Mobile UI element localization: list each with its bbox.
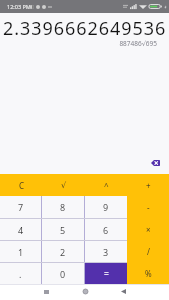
button[interactable]: Recent apps <box>27 285 66 300</box>
button[interactable]: 4 <box>0 219 41 240</box>
button[interactable]: 3 <box>85 241 127 262</box>
staticText: 4 <box>18 224 24 236</box>
button[interactable]: Back <box>104 285 142 300</box>
staticText: ^ <box>104 180 109 191</box>
staticText: × <box>146 224 151 235</box>
button[interactable]: - <box>127 196 169 218</box>
staticText: 0 <box>60 268 66 280</box>
staticText: 7 <box>18 201 24 213</box>
staticText: . <box>19 268 22 280</box>
button[interactable]: C <box>0 174 43 196</box>
button[interactable]: = <box>85 263 127 284</box>
staticText: + <box>146 180 151 191</box>
staticText: C <box>19 180 25 191</box>
staticText: 2.3396662649536 <box>3 16 169 41</box>
button[interactable]: × <box>127 218 169 240</box>
button[interactable]: Backspace <box>151 160 160 166</box>
button[interactable]: 2 <box>42 241 84 262</box>
staticText: 8 <box>60 201 66 213</box>
staticText: / <box>147 246 150 257</box>
button[interactable]: Home <box>66 285 104 300</box>
staticText: - <box>147 202 150 213</box>
staticText: 5 <box>60 224 66 236</box>
staticText: 3 <box>103 246 109 258</box>
button[interactable]: 6 <box>85 219 127 240</box>
button[interactable]: 5 <box>42 219 84 240</box>
button[interactable]: ^ <box>85 174 127 196</box>
button[interactable]: / <box>127 240 169 262</box>
staticText: 12:03 PM <box>7 3 31 10</box>
staticText: = <box>104 268 109 280</box>
button[interactable]: + <box>127 174 169 196</box>
button[interactable]: 0 <box>42 263 84 284</box>
staticText: 6 <box>103 224 109 236</box>
staticText: 9 <box>103 201 109 213</box>
staticText: 2 <box>60 246 66 258</box>
button[interactable]: 9 <box>85 196 127 218</box>
staticText: √ <box>61 181 67 190</box>
button[interactable]: 7 <box>0 196 41 218</box>
staticText: 887486√695 <box>0 39 157 48</box>
button[interactable]: 1 <box>0 241 41 262</box>
button[interactable]: 8 <box>42 196 84 218</box>
button[interactable]: . <box>0 263 41 284</box>
button[interactable]: % <box>127 262 169 284</box>
staticText: % <box>145 268 152 279</box>
button[interactable]: √ <box>43 174 85 196</box>
staticText: 1 <box>18 246 24 258</box>
